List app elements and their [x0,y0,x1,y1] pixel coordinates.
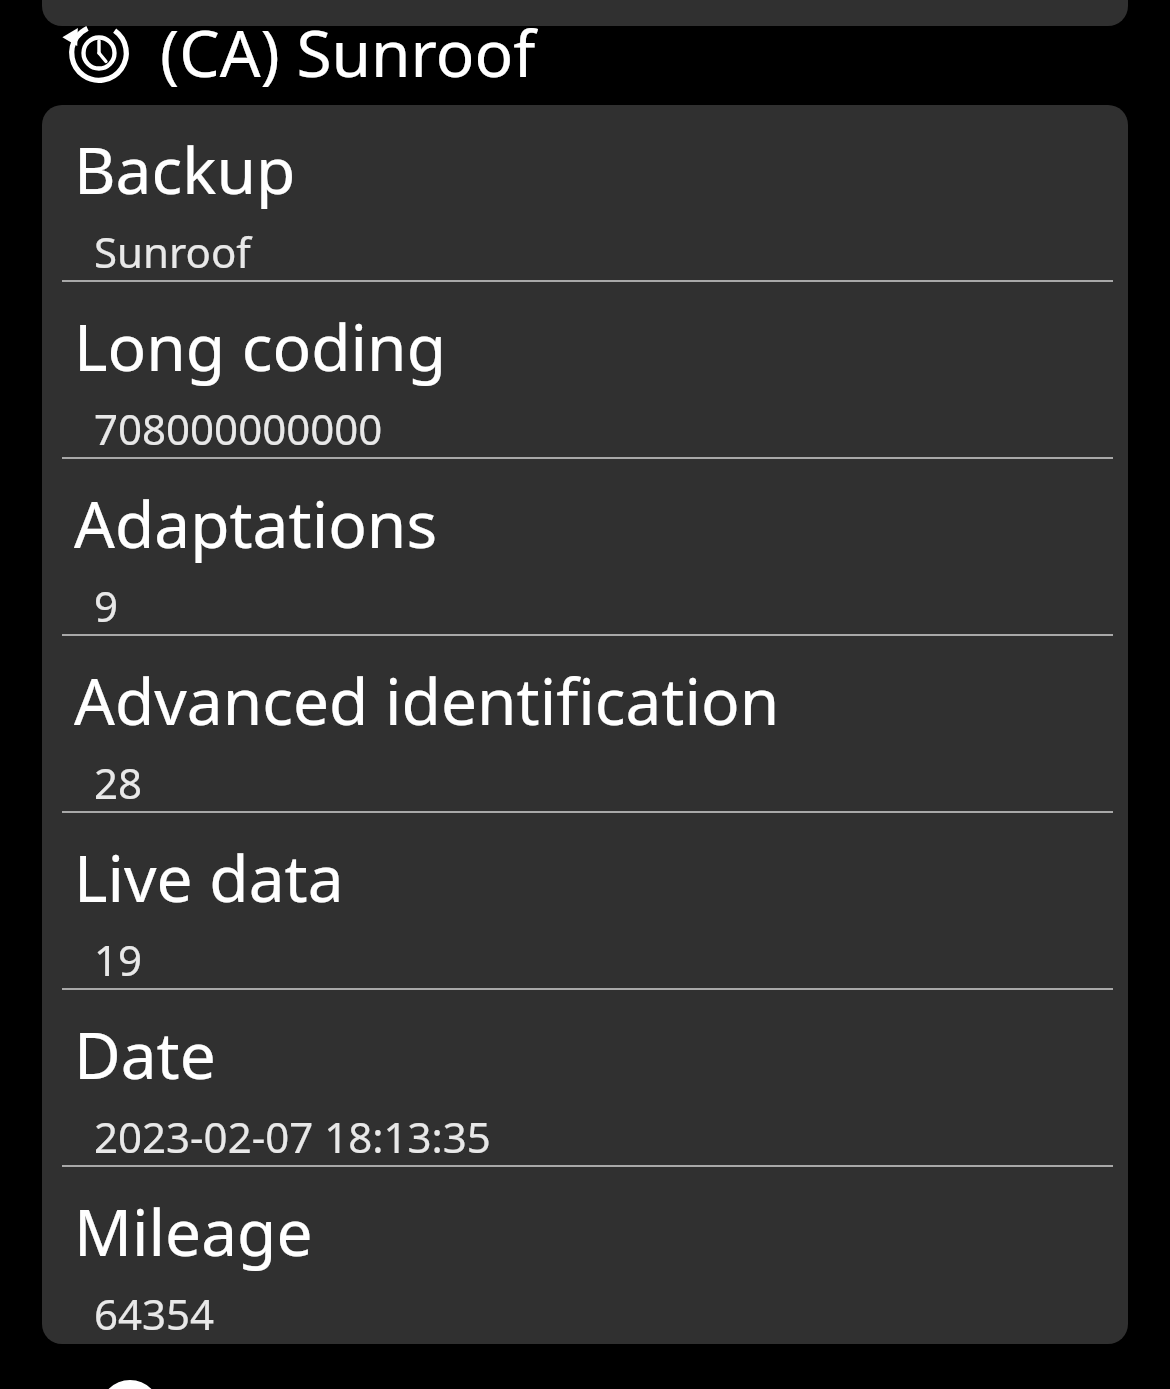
button[interactable]: Live data [42,813,1128,990]
button[interactable]: Date [42,990,1128,1167]
button[interactable]: Advanced identification [42,636,1128,813]
button[interactable]: Adaptations [42,459,1128,636]
button[interactable]: Long coding [42,282,1128,459]
staticText: Adaptations [74,480,438,567]
staticText: Backup [74,126,296,213]
staticText: Mileage [74,1188,313,1275]
staticText: (CA) Sunroof [160,9,536,96]
button[interactable] [42,0,1128,26]
staticText: Live data [74,834,344,921]
button[interactable]: Backup [42,105,1128,282]
staticText: Date [74,1011,216,1098]
staticText: Advanced identification [74,657,780,744]
staticText: 2023-02-07 18:13:35 [94,1108,491,1165]
staticText: 19 [94,931,143,988]
staticText: Sunroof [94,223,251,280]
staticText: 64354 [94,1285,215,1342]
other: History [68,22,130,84]
staticText: 708000000000 [94,400,383,457]
button[interactable]: Mileage [42,1167,1128,1344]
staticText: 9 [94,577,119,634]
staticText: Long coding [74,303,447,390]
staticText: 28 [94,754,143,811]
